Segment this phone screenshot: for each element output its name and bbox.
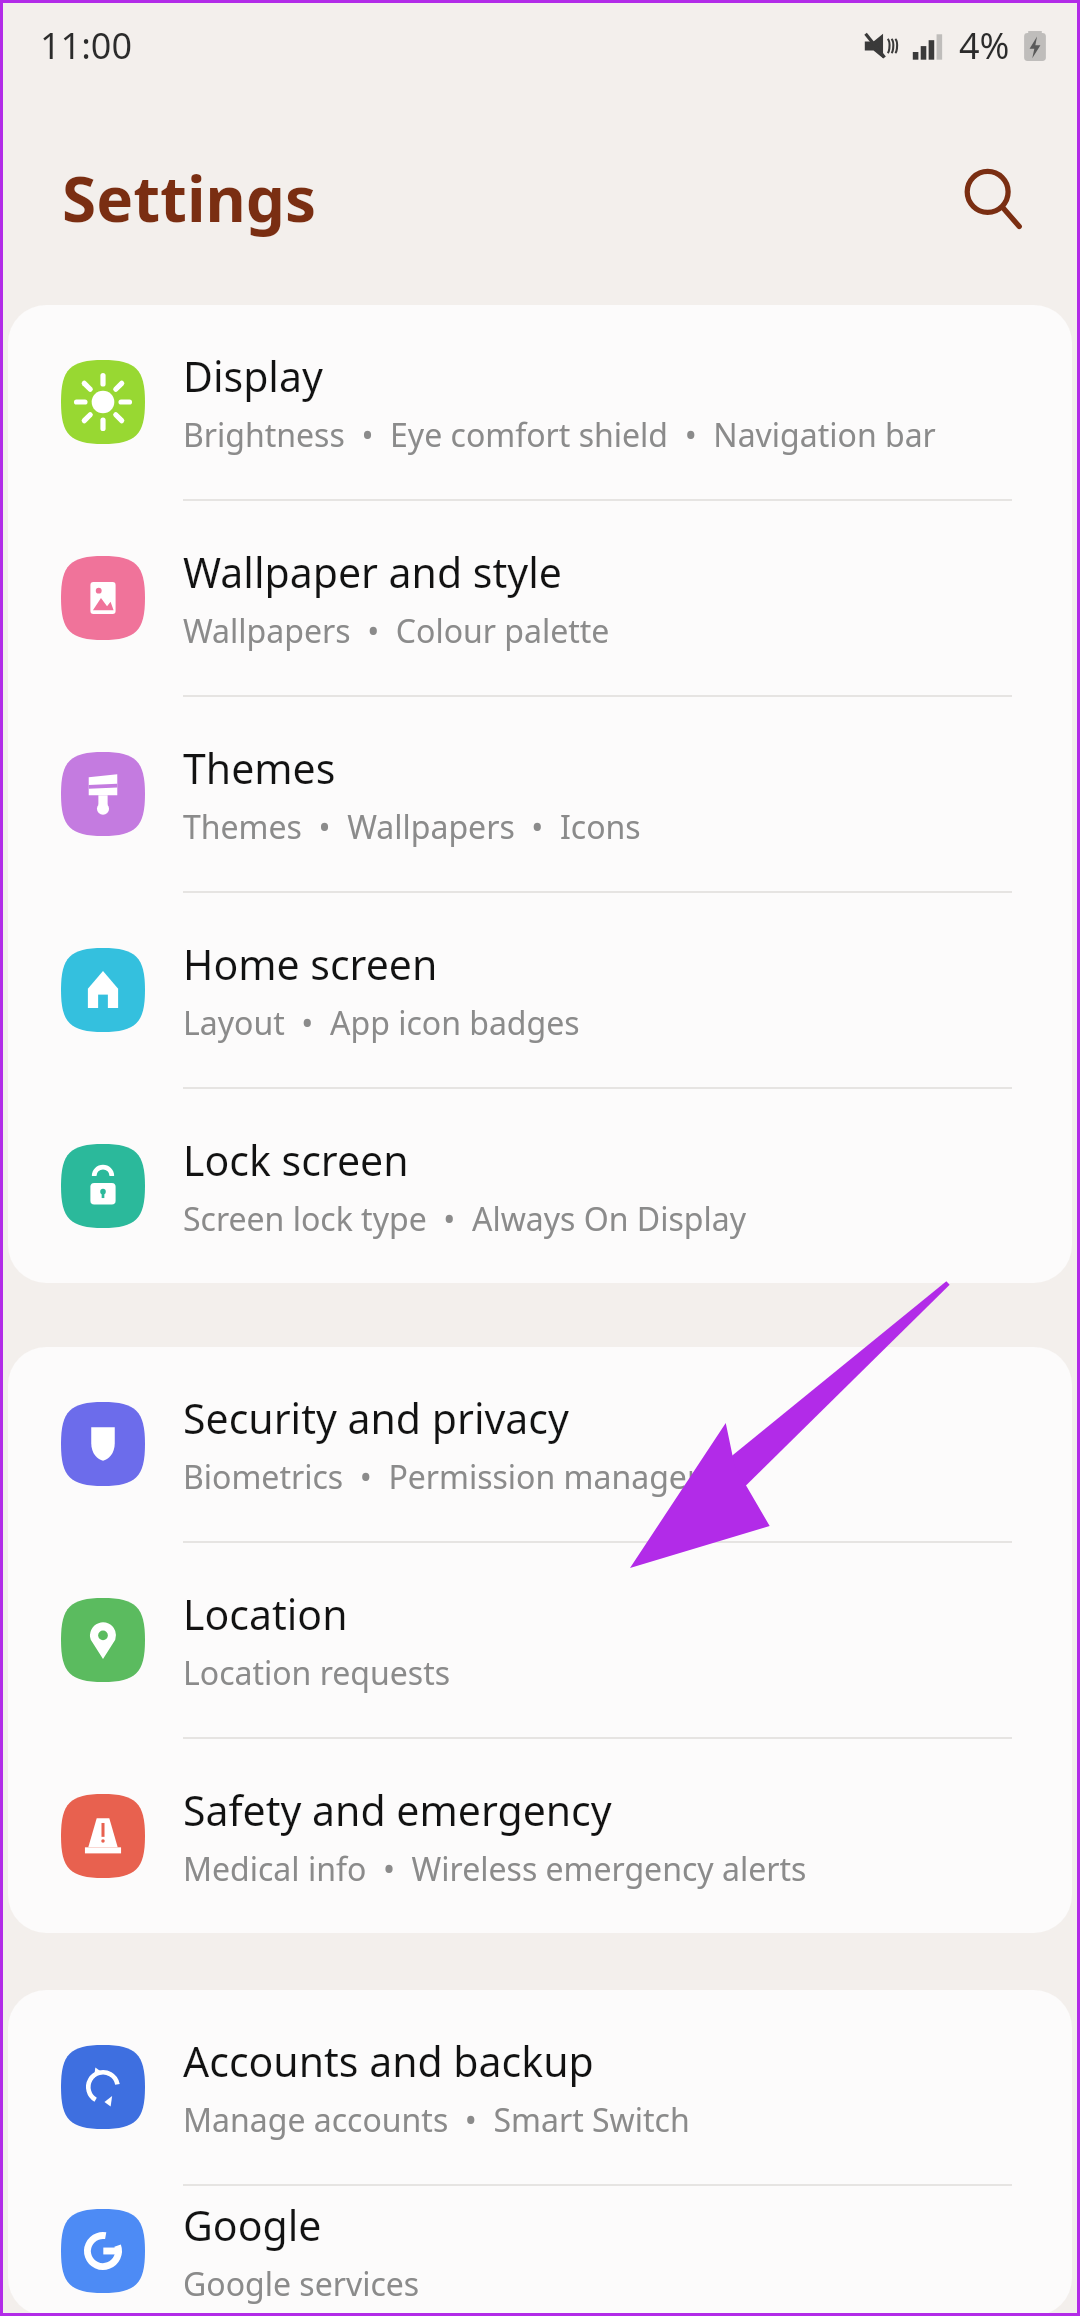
staticText: Layout • App icon badges <box>183 1001 580 1045</box>
staticText: Settings <box>62 156 317 240</box>
staticText: 4% <box>959 21 1010 70</box>
staticText: Location requests <box>183 1651 451 1695</box>
button[interactable]: Home screen <box>8 893 1072 1087</box>
staticText: Wallpaper and style <box>183 544 562 600</box>
button[interactable]: Wallpaper and style <box>8 501 1072 695</box>
button[interactable]: Search <box>944 150 1040 246</box>
button[interactable]: Display <box>8 305 1072 499</box>
staticText: Screen lock type • Always On Display <box>183 1197 747 1241</box>
staticText: Safety and emergency <box>183 1782 612 1838</box>
staticText: Google <box>183 2197 322 2253</box>
staticText: Brightness • Eye comfort shield • Naviga… <box>183 413 936 457</box>
button[interactable]: Accounts and backup <box>8 1990 1072 2184</box>
button[interactable]: Google <box>8 2186 1072 2316</box>
staticText: Manage accounts • Smart Switch <box>183 2098 690 2142</box>
staticText: Lock screen <box>183 1132 409 1188</box>
staticText: 11:00 <box>40 21 133 70</box>
staticText: Security and privacy <box>183 1390 569 1446</box>
staticText: Accounts and backup <box>183 2033 594 2089</box>
staticText: Google services <box>183 2262 420 2306</box>
staticText: Location <box>183 1586 348 1642</box>
button[interactable]: Security and privacy <box>8 1347 1072 1541</box>
staticText: Themes • Wallpapers • Icons <box>183 805 641 849</box>
button[interactable]: Themes <box>8 697 1072 891</box>
staticText: Display <box>183 348 323 404</box>
staticText: Themes <box>183 740 336 796</box>
staticText: Wallpapers • Colour palette <box>183 609 610 653</box>
staticText: Home screen <box>183 936 438 992</box>
button[interactable]: Location <box>8 1543 1072 1737</box>
staticText: Biometrics • Permission manager <box>183 1455 701 1499</box>
button[interactable]: Lock screen <box>8 1089 1072 1283</box>
staticText: Medical info • Wireless emergency alerts <box>183 1847 807 1891</box>
button[interactable]: Safety and emergency <box>8 1739 1072 1933</box>
